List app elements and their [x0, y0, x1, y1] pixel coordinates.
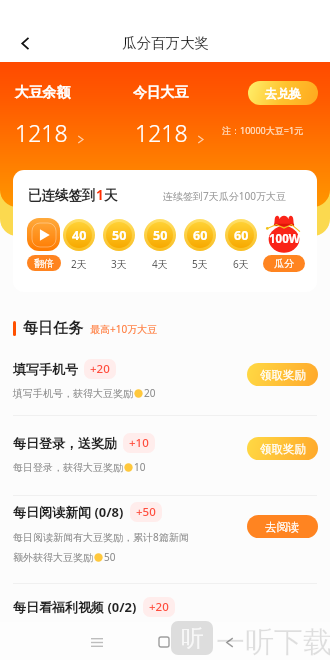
staticText: +50 — [136, 504, 156, 520]
staticText: 每日登录，送奖励 — [13, 435, 117, 451]
staticText: 40 — [72, 227, 87, 244]
staticText: 连续签到7天瓜分100万大豆 — [163, 189, 286, 203]
staticText: 瓜分 — [274, 257, 294, 270]
staticText: 每日任务 — [23, 319, 83, 338]
button[interactable]: Back — [218, 628, 246, 656]
staticText: 50 — [104, 550, 116, 564]
button[interactable]: 每日阅读新闻 (0/8) — [0, 498, 330, 573]
staticText: 100W — [269, 231, 300, 247]
button[interactable]: 去阅读 — [247, 515, 318, 538]
staticText: 注：10000大豆=1元 — [222, 124, 304, 136]
button[interactable] — [27, 218, 60, 251]
button[interactable]: Recents — [83, 628, 111, 656]
staticText: 领取奖励 — [260, 368, 306, 382]
button[interactable]: 领取奖励 — [247, 437, 318, 460]
staticText: +20 — [90, 361, 110, 377]
staticText: 去阅读 — [265, 520, 300, 534]
staticText: 4天 — [152, 257, 168, 271]
staticText: 每日阅读新闻 (0/8) — [13, 503, 124, 521]
staticText: 填写手机号 — [13, 361, 78, 377]
staticText: 20 — [144, 386, 156, 400]
staticText: 2天 — [71, 257, 87, 271]
staticText: 每日阅读新闻有大豆奖励，累计8篇新闻 — [13, 530, 189, 544]
staticText: +10 — [129, 435, 149, 451]
button[interactable]: 去兑换 — [248, 81, 318, 105]
staticText: 50 — [112, 227, 127, 244]
staticText: 今日大豆 — [133, 84, 189, 101]
staticText: 大豆余额 — [15, 84, 71, 101]
staticText: 10 — [134, 460, 146, 474]
button[interactable]: Home — [150, 628, 178, 656]
button[interactable]: 每日登录，送奖励 — [0, 429, 330, 489]
staticText: 1218 — [135, 117, 188, 148]
staticText: 每日登录，获得大豆奖励 — [13, 461, 123, 474]
staticText: 领取奖励 — [260, 442, 306, 456]
staticText: 6天 — [233, 257, 249, 271]
staticText: 去兑换 — [265, 86, 301, 101]
staticText: 60 — [234, 227, 249, 244]
button[interactable]: 领取奖励 — [247, 363, 318, 386]
staticText: 60 — [193, 227, 208, 244]
staticText: 天 — [104, 187, 118, 204]
staticText: 3天 — [111, 257, 127, 271]
staticText: 5天 — [192, 257, 208, 271]
staticText: 填写手机号，获得大豆奖励 — [13, 387, 133, 400]
button[interactable]: 填写手机号 — [0, 355, 330, 415]
staticText: 50 — [153, 227, 168, 244]
staticText: 听 — [181, 624, 204, 653]
staticText: 已连续签到 — [28, 187, 96, 204]
staticText: 1 — [96, 186, 104, 204]
button[interactable]: 每日看福利视频 (0/2) — [0, 593, 330, 633]
button[interactable]: Back — [10, 28, 40, 58]
staticText: 一听下载 — [216, 624, 330, 660]
staticText: 每日看福利视频 (0/2) — [13, 598, 137, 616]
staticText: 额外获得大豆奖励 — [13, 551, 93, 564]
staticText: 1218 — [15, 117, 68, 148]
staticText: +20 — [149, 599, 169, 615]
staticText: 翻倍 — [34, 257, 54, 270]
staticText: 瓜分百万大奖 — [122, 34, 209, 52]
staticText: 最高+10万大豆 — [90, 322, 158, 336]
